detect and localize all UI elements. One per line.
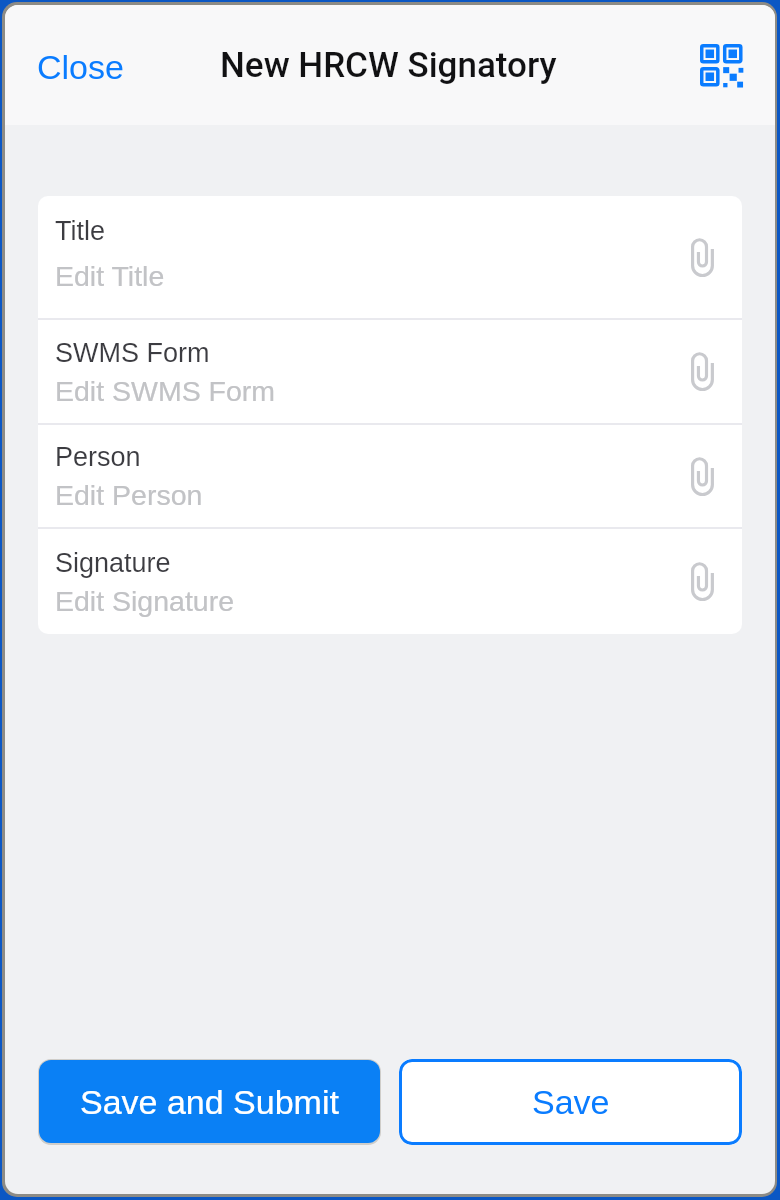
staticText: Close (37, 48, 124, 86)
staticText: SWMS Form (55, 338, 210, 368)
staticText: Edit SWMS Form (55, 375, 276, 407)
staticText: Signature (55, 548, 171, 578)
staticText: New HRCW Signatory (220, 45, 557, 86)
staticText: Save and Submit (80, 1083, 339, 1121)
button[interactable]: Scan QR code (690, 34, 752, 96)
button[interactable]: Save (399, 1059, 742, 1145)
button[interactable]: Save and Submit (38, 1059, 381, 1145)
staticText: Edit Person (55, 479, 203, 511)
staticText: Save (532, 1083, 610, 1121)
button[interactable]: Title (38, 196, 742, 318)
staticText: Edit Signature (55, 585, 235, 617)
button[interactable]: Signature (38, 529, 742, 634)
button[interactable]: Person (38, 425, 742, 527)
staticText: Edit Title (55, 260, 165, 292)
staticText: Title (55, 216, 106, 246)
button[interactable]: Close (5, 32, 148, 102)
staticText: Person (55, 442, 141, 472)
button[interactable]: SWMS Form (38, 320, 742, 423)
